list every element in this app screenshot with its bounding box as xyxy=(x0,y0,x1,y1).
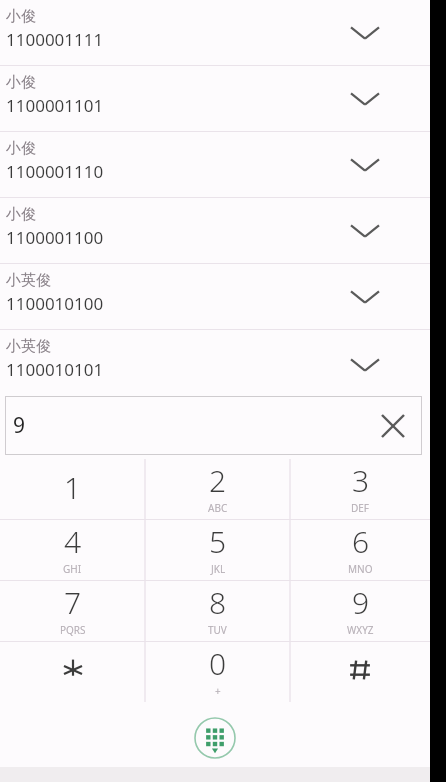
button[interactable]: 4 xyxy=(0,520,145,580)
staticText: 小俊 xyxy=(6,73,36,92)
staticText: TUV xyxy=(208,623,227,637)
staticText: 3 xyxy=(352,460,370,501)
button[interactable] xyxy=(290,642,430,702)
button[interactable] xyxy=(0,642,145,702)
staticText: 1 xyxy=(64,467,82,508)
staticText: PQRS xyxy=(60,623,86,637)
button[interactable]: Expand xyxy=(348,148,382,182)
button[interactable]: 7 xyxy=(0,581,145,641)
button[interactable]: Expand xyxy=(348,82,382,116)
staticText: 1100001110 xyxy=(6,160,104,183)
button[interactable]: 9 xyxy=(5,396,422,455)
button[interactable]: Hide dialpad xyxy=(193,716,237,760)
button[interactable]: 9 xyxy=(290,581,430,641)
button[interactable]: 2 xyxy=(145,459,290,519)
staticText: 小俊 xyxy=(6,139,36,158)
button[interactable]: Clear xyxy=(376,409,410,443)
staticText: ABC xyxy=(208,501,228,515)
staticText: 小英俊 xyxy=(6,337,51,356)
button[interactable]: 0 xyxy=(145,642,290,702)
staticText: GHI xyxy=(63,562,82,576)
staticText: 小英俊 xyxy=(6,271,51,290)
staticText: MNO xyxy=(348,562,373,576)
button[interactable]: 小俊 xyxy=(0,132,430,198)
button[interactable]: 1 xyxy=(0,459,145,519)
staticText: 2 xyxy=(209,460,227,501)
button[interactable]: 6 xyxy=(290,520,430,580)
button[interactable]: 小俊 xyxy=(0,0,430,66)
button[interactable]: 8 xyxy=(145,581,290,641)
button[interactable]: Expand xyxy=(348,16,382,50)
button[interactable]: 小英俊 xyxy=(0,264,430,330)
button[interactable]: Expand xyxy=(348,280,382,314)
staticText: 1100001100 xyxy=(6,226,104,249)
button[interactable]: 5 xyxy=(145,520,290,580)
button[interactable]: 3 xyxy=(290,459,430,519)
staticText: DEF xyxy=(351,501,370,515)
button[interactable]: Expand xyxy=(348,348,382,382)
staticText: 5 xyxy=(209,521,227,562)
staticText: JKL xyxy=(211,562,226,576)
staticText: 小俊 xyxy=(6,205,36,224)
staticText: 1100001101 xyxy=(6,94,104,117)
staticText: 0 xyxy=(209,643,227,684)
button[interactable]: 小英俊 xyxy=(0,330,430,391)
staticText: 7 xyxy=(64,582,82,623)
staticText: 6 xyxy=(352,521,370,562)
staticText: 1100010100 xyxy=(6,292,104,315)
button[interactable]: Expand xyxy=(348,214,382,248)
staticText: + xyxy=(215,684,221,698)
button[interactable]: 小俊 xyxy=(0,198,430,264)
staticText: 9 xyxy=(13,411,26,440)
staticText: 8 xyxy=(209,582,227,623)
staticText: WXYZ xyxy=(347,623,374,637)
staticText: 1100001111 xyxy=(6,28,104,51)
staticText: 1100010101 xyxy=(6,358,104,381)
staticText: 小俊 xyxy=(6,7,36,26)
staticText: 9 xyxy=(352,582,370,623)
button[interactable]: 小俊 xyxy=(0,66,430,132)
staticText: 4 xyxy=(64,521,82,562)
